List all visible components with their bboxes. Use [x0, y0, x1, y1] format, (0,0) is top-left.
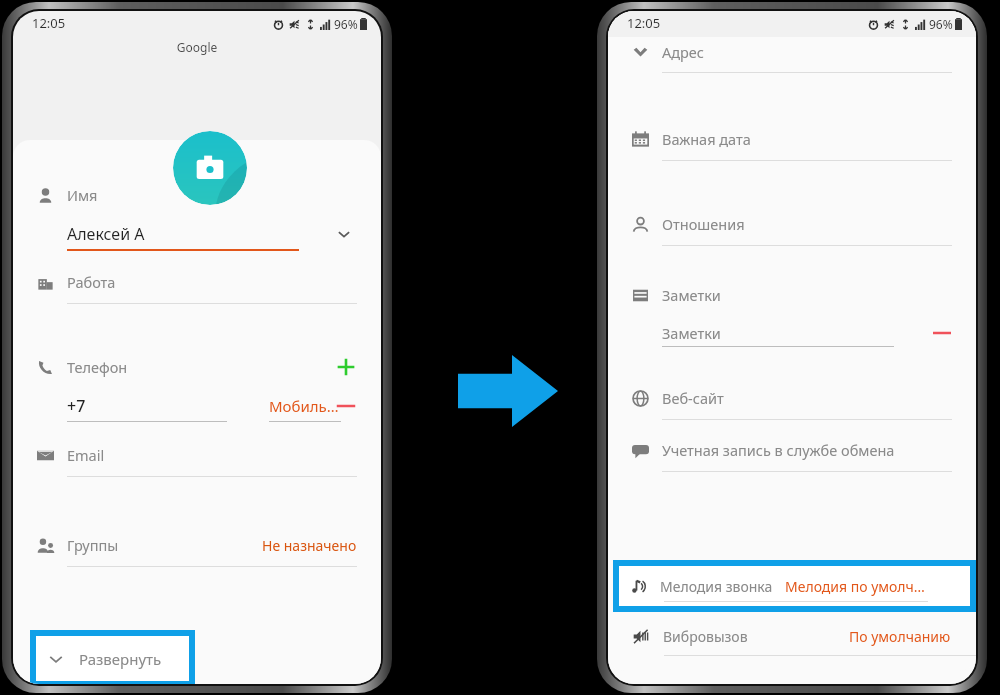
staticText: Развернуть — [79, 649, 162, 669]
staticText: Веб-сайт — [662, 388, 724, 408]
staticText: Учетная запись в службе обмена — [662, 440, 895, 460]
button[interactable]: Учетная запись в службе обмена — [632, 439, 952, 461]
staticText: Не назначено — [262, 536, 357, 555]
button[interactable]: Работа — [37, 271, 357, 293]
button[interactable]: Важная дата — [632, 128, 952, 150]
staticText: По умолчанию — [849, 627, 951, 646]
staticText: Алексей А — [67, 223, 145, 245]
button[interactable]: Remove phone — [335, 395, 357, 417]
staticText: Отношения — [662, 214, 745, 234]
button[interactable]: Веб-сайт — [632, 387, 952, 409]
staticText: Мелодия по умолч… — [785, 577, 925, 596]
button[interactable]: Отношения — [632, 213, 952, 235]
button[interactable]: Адрес — [632, 41, 952, 63]
button[interactable]: Алексей А — [37, 217, 357, 251]
staticText: 12:05 — [627, 14, 661, 32]
button[interactable]: Имя — [37, 184, 357, 206]
button[interactable]: Add photo — [173, 131, 247, 205]
button[interactable]: Мелодия звонка — [616, 563, 973, 609]
staticText: Мобиль… — [269, 396, 339, 416]
button[interactable]: Вибровызов — [608, 615, 976, 657]
button[interactable]: Заметки — [632, 284, 952, 306]
staticText: Email — [67, 445, 105, 465]
staticText: +7 — [67, 395, 86, 417]
staticText: Группы — [67, 535, 119, 555]
staticText: Заметки — [662, 285, 721, 305]
staticText: Заметки — [662, 323, 721, 343]
button[interactable]: Expand name — [331, 221, 357, 247]
staticText: Важная дата — [662, 129, 751, 149]
staticText: Вибровызов — [663, 627, 748, 646]
staticText: Работа — [67, 272, 116, 292]
staticText: 12:05 — [32, 14, 66, 32]
button[interactable]: Remove note — [932, 323, 952, 343]
staticText: Имя — [67, 185, 98, 205]
staticText: Адрес — [662, 42, 705, 62]
button[interactable]: Развернуть — [33, 633, 192, 684]
staticText: Мелодия звонка — [660, 577, 773, 596]
button[interactable]: Группы — [37, 534, 357, 556]
button[interactable]: Телефон — [37, 356, 357, 378]
button[interactable]: Email — [37, 444, 357, 466]
staticText: Телефон — [67, 357, 128, 377]
staticText: 96% — [929, 16, 953, 32]
staticText: Google — [13, 39, 381, 55]
button[interactable]: Add phone — [335, 356, 357, 378]
staticText: 96% — [334, 16, 358, 32]
